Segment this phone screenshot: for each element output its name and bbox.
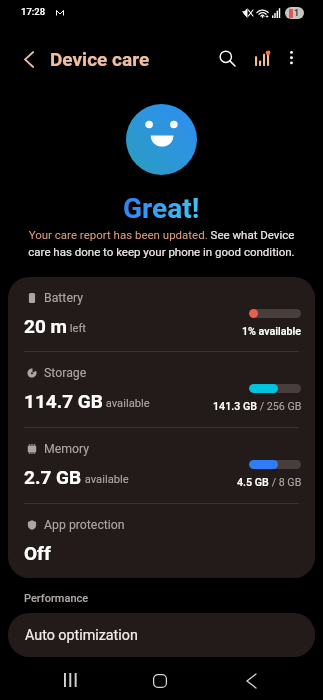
staticText: available	[82, 473, 129, 486]
button[interactable]: Back	[229, 659, 273, 700]
button[interactable]: App protection	[8, 504, 315, 578]
staticText: Battery	[44, 291, 84, 305]
staticText: 20 m	[24, 315, 67, 337]
button[interactable]: More options	[277, 43, 307, 73]
staticText: 17:28	[21, 6, 46, 17]
staticText: Off	[24, 542, 51, 564]
staticText: / 256 GB	[257, 400, 302, 413]
button[interactable]: Recent apps	[48, 659, 92, 700]
staticText: Memory	[44, 442, 90, 456]
staticText: left	[67, 322, 86, 335]
button[interactable]: Battery	[8, 277, 315, 352]
staticText: available	[103, 397, 150, 410]
staticText: Performance	[24, 592, 89, 605]
button[interactable]: Storage	[8, 352, 315, 427]
staticText: 2.7 GB	[24, 466, 82, 488]
staticText: App protection	[44, 518, 125, 532]
staticText: Auto optimization	[25, 627, 138, 644]
button[interactable]: Memory	[8, 428, 315, 503]
staticText: Great!	[123, 192, 200, 225]
staticText: 141.3 GB	[213, 400, 257, 413]
button[interactable]: Auto optimization	[8, 613, 315, 657]
staticText: 1% available	[242, 325, 302, 338]
button[interactable]: Search	[213, 44, 243, 74]
staticText: 114.7 GB	[24, 390, 103, 412]
staticText: Device care	[50, 48, 150, 70]
staticText: 4.5 GB	[237, 476, 269, 489]
staticText: Storage	[44, 366, 87, 380]
button[interactable]: Home	[138, 659, 182, 700]
staticText: 1	[294, 8, 300, 19]
staticText: Your care report has been updated. See w…	[22, 228, 301, 259]
staticText: / 8 GB	[269, 476, 302, 489]
button[interactable]: Navigate up	[14, 44, 44, 74]
button[interactable]: Diagnostics	[247, 43, 277, 73]
